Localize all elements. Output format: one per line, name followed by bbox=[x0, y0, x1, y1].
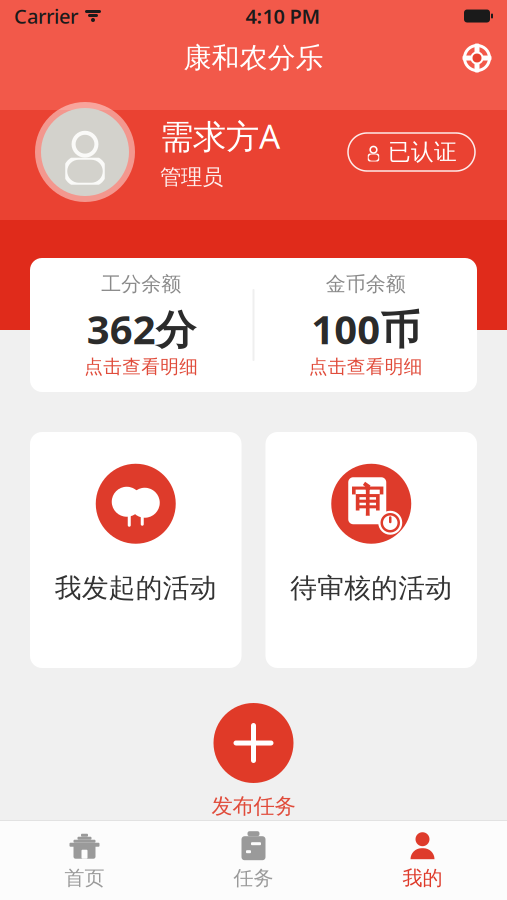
staticText: 已认证 bbox=[388, 138, 457, 166]
staticText: 康和农分乐 bbox=[183, 41, 323, 75]
staticText: 发布任务 bbox=[211, 793, 295, 819]
staticText: 任务 bbox=[233, 866, 273, 890]
staticText: 点击查看明细 bbox=[309, 355, 423, 378]
button[interactable]: 首页 bbox=[0, 821, 169, 900]
staticText: 点击查看明细 bbox=[84, 355, 198, 378]
staticText: 待审核的活动 bbox=[290, 572, 452, 604]
button[interactable]: 工分余额 bbox=[30, 258, 252, 392]
staticText: 我的 bbox=[402, 866, 442, 890]
button[interactable]: 已认证 bbox=[348, 133, 475, 171]
staticText: 工分余额 bbox=[101, 272, 181, 296]
staticText: 需求方A bbox=[160, 114, 280, 158]
button[interactable]: Settings bbox=[455, 36, 499, 80]
staticText: 审 bbox=[351, 480, 384, 521]
staticText: 首页 bbox=[64, 866, 104, 890]
staticText: 4:10 PM bbox=[245, 3, 320, 29]
staticText: 100币 bbox=[311, 302, 420, 355]
button[interactable]: 我的 bbox=[338, 821, 507, 900]
button[interactable]: 任务 bbox=[169, 821, 338, 900]
staticText: 我发起的活动 bbox=[55, 572, 217, 604]
button[interactable]: 审 bbox=[265, 432, 477, 668]
button[interactable]: 金币余额 bbox=[254, 258, 477, 392]
button[interactable]: 发布任务 bbox=[211, 703, 295, 819]
staticText: 管理员 bbox=[160, 164, 223, 190]
staticText: 金币余额 bbox=[326, 272, 406, 296]
staticText: Carrier bbox=[14, 3, 78, 29]
staticText: 362分 bbox=[87, 302, 196, 355]
button[interactable]: 我发起的活动 bbox=[30, 432, 241, 668]
